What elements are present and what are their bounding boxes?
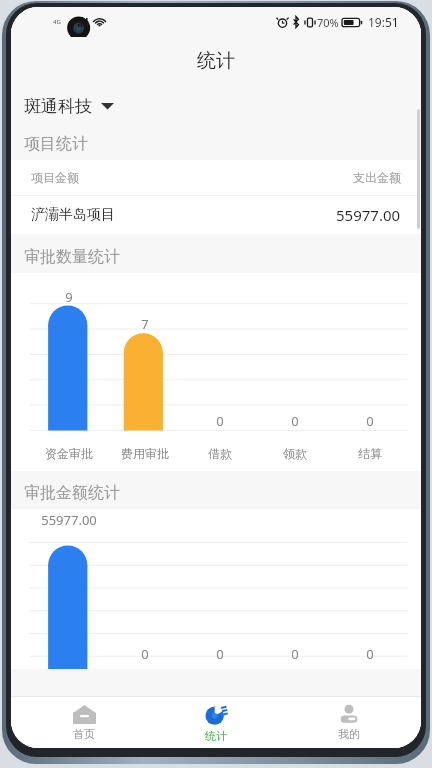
staticText: 70% [317, 15, 339, 30]
staticText: 斑通科技 [24, 96, 92, 117]
staticText: 0 [141, 645, 149, 663]
staticText: 支出金额 [353, 170, 401, 185]
staticText: 我的 [338, 727, 360, 741]
staticText: 项目金额 [31, 170, 79, 185]
staticText: 36 [70, 18, 77, 26]
staticText: 统计 [205, 729, 227, 743]
staticText: 借款 [208, 446, 232, 461]
staticText: 7 [141, 315, 149, 333]
staticText: 55977.00 [41, 511, 97, 529]
staticText: 0 [291, 645, 299, 663]
staticText: 0 [366, 645, 374, 663]
button[interactable]: 斑通科技 [11, 85, 421, 127]
button[interactable]: 首页 [24, 697, 144, 748]
staticText: 费用审批 [121, 446, 169, 461]
staticText: 浐灞半岛项目 [31, 206, 115, 224]
button[interactable]: 浐灞半岛项目 [11, 196, 421, 234]
staticText: 4G [53, 18, 61, 26]
staticText: 首页 [73, 727, 95, 741]
staticText: 领款 [283, 446, 307, 461]
staticText: 0 [216, 645, 224, 663]
staticText: 统计 [197, 49, 235, 73]
staticText: 0 [366, 412, 374, 430]
staticText: 项目统计 [24, 134, 88, 154]
staticText: 55977.00 [336, 205, 401, 225]
staticText: 9 [65, 288, 73, 306]
staticText: 0 [216, 412, 224, 430]
button[interactable]: 统计 [156, 697, 276, 748]
staticText: 审批数量统计 [24, 247, 120, 267]
staticText: 结算 [358, 446, 382, 461]
button[interactable]: 我的 [289, 697, 409, 748]
staticText: 0 [291, 412, 299, 430]
staticText: 资金审批 [45, 446, 93, 461]
staticText: 19:51 [368, 14, 399, 30]
staticText: 审批金额统计 [24, 483, 120, 503]
